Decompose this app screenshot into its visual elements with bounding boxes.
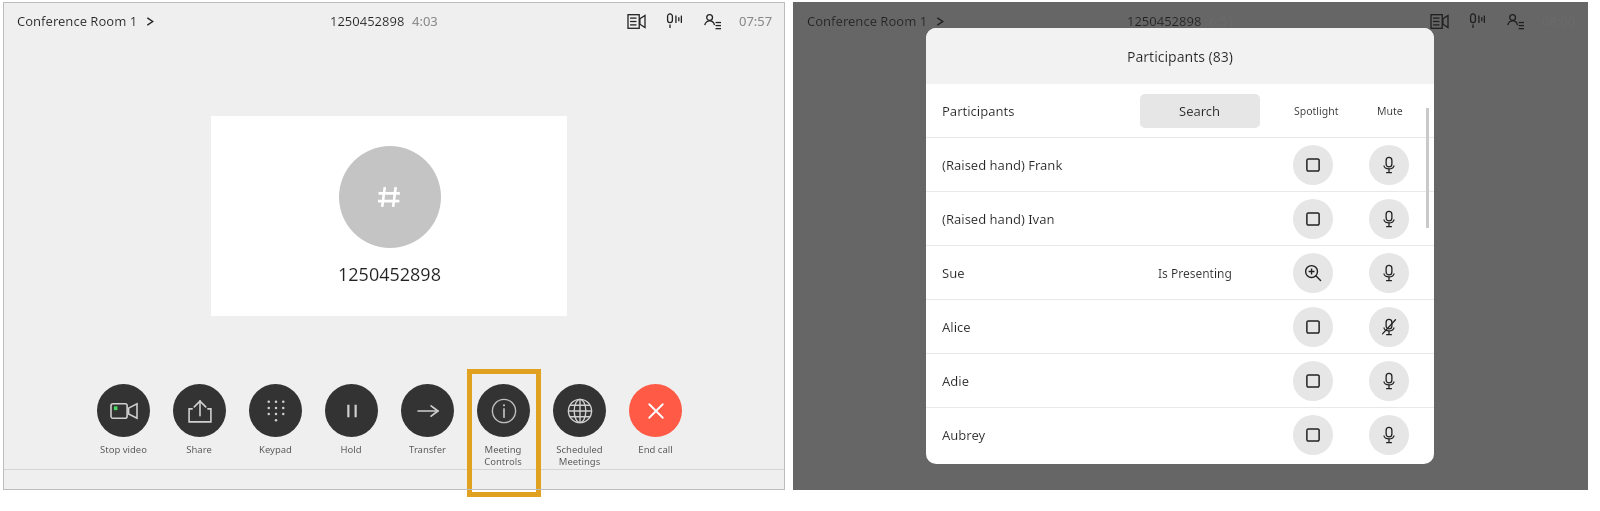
staticText: Scheduled Meetings xyxy=(556,443,603,468)
staticText: 4:03 xyxy=(412,12,438,30)
staticText: 6:51 xyxy=(1209,12,1235,30)
button[interactable]: Participants xyxy=(1504,10,1526,32)
staticText: 1250452898 xyxy=(330,12,405,30)
button[interactable]: Microphone xyxy=(663,10,685,32)
button[interactable]: Mute xyxy=(1369,361,1409,401)
staticText: Participants (83) xyxy=(1127,47,1234,66)
staticText: End call xyxy=(638,443,673,456)
staticText: Conference Room 1 xyxy=(807,12,928,30)
button[interactable]: (Raised hand) Frank xyxy=(926,138,1434,191)
staticText: 1250452898 xyxy=(1127,12,1202,30)
button[interactable]: Search xyxy=(1140,94,1260,128)
staticText: (Raised hand) Frank xyxy=(942,156,1063,174)
staticText: Share xyxy=(186,443,212,456)
button[interactable]: Spotlight off xyxy=(1293,307,1333,347)
button[interactable]: Spotlight off xyxy=(1293,415,1333,455)
staticText: Spotlight xyxy=(1294,104,1339,118)
button[interactable]: Conference Room 1 xyxy=(17,12,156,30)
button[interactable]: Mute xyxy=(1369,145,1409,185)
staticText: Transfer xyxy=(409,443,446,456)
button[interactable]: Participants xyxy=(701,10,723,32)
button[interactable]: Transfer xyxy=(400,384,454,456)
button[interactable]: Unmute xyxy=(1369,307,1409,347)
button[interactable]: Meeting Controls xyxy=(476,384,530,468)
staticText: Keypad xyxy=(259,443,292,456)
button[interactable]: Spotlight off xyxy=(1293,199,1333,239)
staticText: Participants xyxy=(942,102,1015,120)
button[interactable]: Mute xyxy=(1369,199,1409,239)
staticText: 07:57 xyxy=(739,12,773,30)
button[interactable]: Mute xyxy=(1369,253,1409,293)
staticText: (Raised hand) Ivan xyxy=(942,210,1055,228)
button[interactable]: Hold xyxy=(324,384,378,456)
staticText: Search xyxy=(1179,102,1221,120)
button[interactable]: Alice xyxy=(926,300,1434,353)
button[interactable]: Spotlight off xyxy=(1293,145,1333,185)
staticText: Meeting Controls xyxy=(484,443,522,468)
button[interactable]: Video layout xyxy=(625,10,647,32)
button[interactable]: Adie xyxy=(926,354,1434,407)
staticText: Conference Room 1 xyxy=(17,12,138,30)
button[interactable]: Spotlight xyxy=(1293,253,1333,293)
button[interactable]: Microphone xyxy=(1466,10,1488,32)
staticText: Aubrey xyxy=(942,426,986,444)
staticText: Adie xyxy=(942,372,969,390)
staticText: Sue xyxy=(942,264,965,282)
button[interactable]: Aubrey xyxy=(926,408,1434,461)
staticText: Hold xyxy=(340,443,362,456)
button[interactable]: Conference Room 1 xyxy=(807,12,946,30)
button[interactable]: End call xyxy=(628,384,682,456)
button[interactable]: Spotlight off xyxy=(1293,361,1333,401)
button[interactable]: Stop video xyxy=(96,384,150,456)
button[interactable]: Scheduled Meetings xyxy=(552,384,606,468)
staticText: 1250452898 xyxy=(338,262,441,287)
button[interactable]: Mute xyxy=(1369,415,1409,455)
button[interactable]: (Raised hand) Ivan xyxy=(926,192,1434,245)
staticText: Alice xyxy=(942,318,971,336)
button[interactable]: Video layout xyxy=(1428,10,1450,32)
staticText: Is Presenting xyxy=(1158,265,1232,281)
button[interactable]: Keypad xyxy=(248,384,302,456)
button[interactable]: Share xyxy=(172,384,226,456)
button[interactable]: Sue xyxy=(926,246,1434,299)
staticText: Mute xyxy=(1377,104,1403,118)
staticText: Stop video xyxy=(100,443,147,456)
